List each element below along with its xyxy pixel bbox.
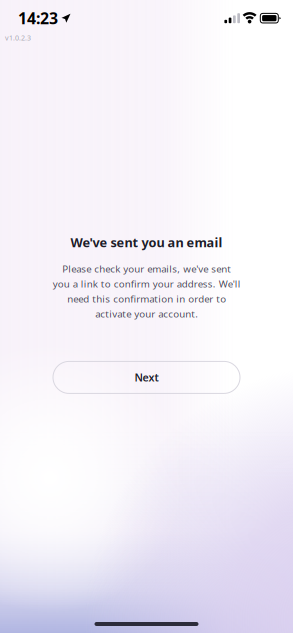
staticText: We've sent you an email xyxy=(70,234,222,251)
staticText: v1.0.2.3 xyxy=(5,33,31,43)
staticText: Next xyxy=(134,370,158,384)
staticText: Please check your emails, we've sent you… xyxy=(52,262,240,320)
button[interactable]: Next xyxy=(53,361,240,393)
staticText: 14:23 xyxy=(18,7,58,29)
